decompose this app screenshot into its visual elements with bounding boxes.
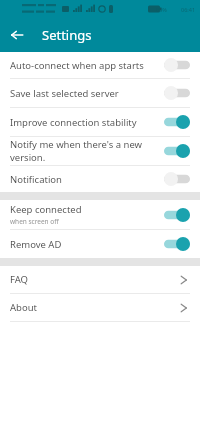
button[interactable]: Improve connection stability (0, 108, 200, 137)
button[interactable]: Auto-connect when app starts (0, 52, 200, 79)
staticText: Keep connected (10, 203, 82, 216)
staticText: Auto-connect when app starts (10, 59, 144, 72)
staticText: Notify me when there's a new version. (10, 138, 164, 164)
staticText: Save last selected server (10, 87, 119, 100)
staticText: Remove AD (10, 238, 62, 251)
button[interactable]: Notification (0, 166, 200, 192)
staticText: Notification (10, 173, 62, 186)
button[interactable]: About (0, 294, 200, 322)
button[interactable]: Save last selected server (0, 79, 200, 108)
button[interactable]: Notify me when there's a new version. (0, 137, 200, 166)
staticText: 06:41 (181, 6, 196, 13)
button[interactable]: Remove AD (0, 230, 200, 258)
staticText: FAQ (10, 273, 180, 286)
staticText: About (10, 301, 180, 314)
button[interactable]: Back (0, 18, 34, 52)
button[interactable]: FAQ (0, 266, 200, 294)
staticText: when screen off (10, 217, 59, 226)
button[interactable]: Keep connected (0, 200, 200, 230)
staticText: Settings (42, 26, 92, 44)
staticText: 65% (156, 6, 167, 13)
staticText: Improve connection stability (10, 116, 137, 129)
